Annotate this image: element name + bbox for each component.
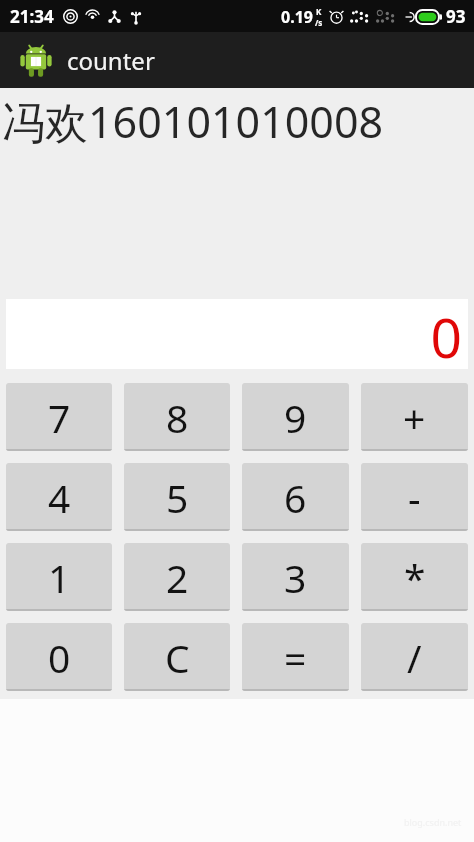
staticText: C — [165, 631, 190, 684]
button[interactable]: 8 — [124, 383, 230, 451]
staticText: - — [408, 471, 421, 524]
staticText: 0 — [430, 299, 462, 369]
staticText: 7 — [48, 391, 71, 444]
staticText: 8 — [166, 391, 189, 444]
button[interactable]: = — [242, 623, 349, 691]
staticText: 0 — [48, 631, 71, 684]
button[interactable]: 0 — [6, 623, 112, 691]
button[interactable]: C — [124, 623, 230, 691]
staticText: 9 — [284, 391, 307, 444]
staticText: = — [284, 631, 307, 684]
staticText: * — [404, 551, 426, 604]
staticText: 0.19 — [281, 6, 313, 28]
staticText: 2 — [166, 551, 189, 604]
button[interactable]: 5 — [124, 463, 230, 531]
staticText: counter — [67, 44, 155, 77]
button[interactable]: / — [361, 623, 468, 691]
button[interactable]: 9 — [242, 383, 349, 451]
staticText: 21:34 — [10, 5, 54, 28]
staticText: 6 — [284, 471, 307, 524]
staticText: /s — [315, 17, 323, 28]
staticText: / — [407, 631, 422, 684]
button[interactable]: 4 — [6, 463, 112, 531]
staticText: 3 — [284, 551, 307, 604]
staticText: 93 — [446, 5, 466, 28]
button[interactable]: 1 — [6, 543, 112, 611]
staticText: 5 — [166, 471, 189, 524]
staticText: K — [316, 6, 322, 17]
staticText: 1 — [48, 551, 71, 604]
button[interactable]: * — [361, 543, 468, 611]
button[interactable]: 3 — [242, 543, 349, 611]
button[interactable]: + — [361, 383, 468, 451]
button[interactable]: 0 — [6, 299, 468, 369]
staticText: blog.csdn.net — [404, 816, 462, 828]
staticText: 4 — [48, 471, 71, 524]
staticText: + — [403, 391, 426, 444]
button[interactable]: - — [361, 463, 468, 531]
button[interactable]: 7 — [6, 383, 112, 451]
button[interactable]: 6 — [242, 463, 349, 531]
staticText: 冯欢160101010008 — [2, 92, 384, 151]
button[interactable]: 2 — [124, 543, 230, 611]
